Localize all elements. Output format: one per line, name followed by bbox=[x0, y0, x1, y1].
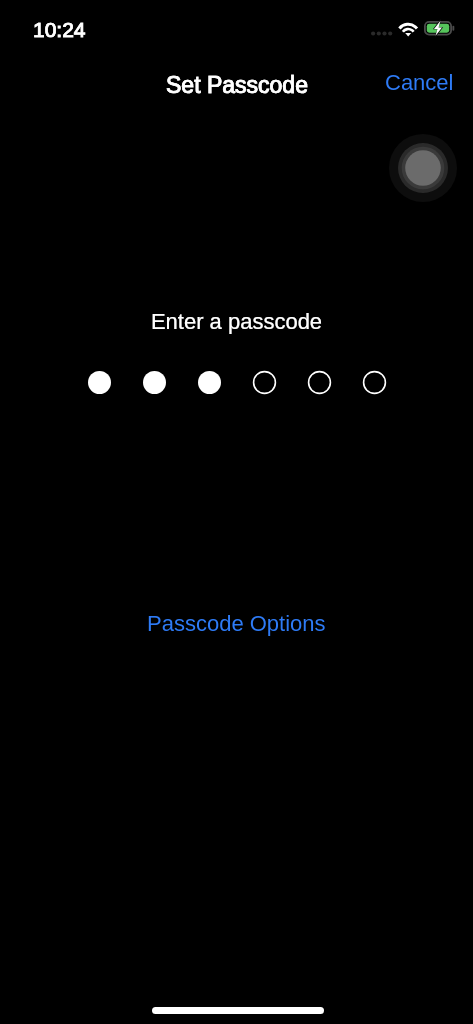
button[interactable]: Passcode Options bbox=[131, 605, 342, 642]
other: Wi-Fi bbox=[396, 18, 420, 39]
staticText: 10:24 bbox=[33, 18, 86, 41]
button[interactable]: AssistiveTouch bbox=[388, 133, 458, 203]
button[interactable]: Cancel bbox=[364, 64, 473, 101]
staticText: Passcode Options bbox=[147, 611, 326, 636]
other: Battery charging bbox=[424, 21, 455, 36]
staticText: Set Passcode bbox=[166, 72, 308, 98]
staticText: Enter a passcode bbox=[0, 309, 473, 334]
staticText: Cancel bbox=[385, 70, 454, 95]
staticText: 10:24 bbox=[33, 18, 86, 41]
staticText: Set Passcode bbox=[166, 72, 308, 98]
other: Cellular signal bbox=[371, 31, 393, 36]
